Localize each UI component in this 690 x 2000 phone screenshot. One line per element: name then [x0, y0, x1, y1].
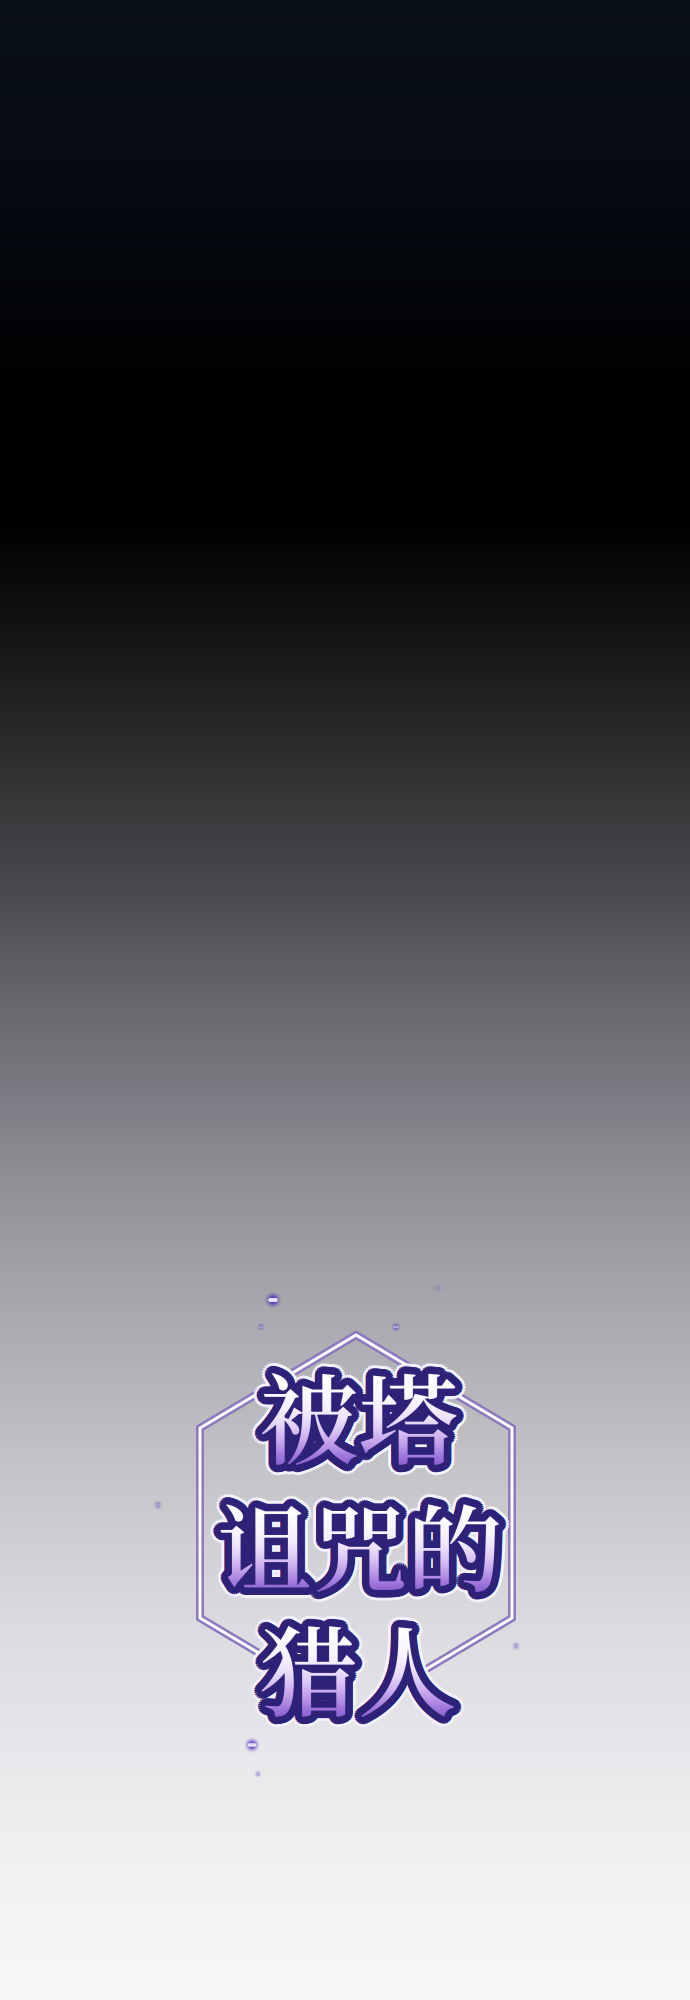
- staticText: 被塔: [259, 1338, 457, 1480]
- staticText: 被塔: [260, 1352, 458, 1494]
- staticText: 猎人: [269, 1595, 467, 1737]
- staticText: 被塔: [270, 1346, 468, 1488]
- staticText: 猎人: [262, 1596, 460, 1738]
- staticText: 猎人: [254, 1596, 452, 1738]
- staticText: 猎人: [252, 1593, 450, 1735]
- staticText: 猎人: [249, 1598, 447, 1740]
- staticText: 被塔: [261, 1348, 459, 1490]
- staticText: 诅咒的: [220, 1470, 505, 1606]
- staticText: 被塔: [257, 1333, 455, 1475]
- staticText: 被塔: [259, 1340, 457, 1482]
- staticText: 猎人: [250, 1593, 448, 1735]
- staticText: 被塔: [266, 1347, 464, 1489]
- staticText: 被塔: [265, 1338, 463, 1480]
- staticText: 猎人: [262, 1595, 460, 1737]
- staticText: 被塔: [263, 1345, 461, 1486]
- staticText: 被塔: [256, 1350, 454, 1491]
- staticText: 被塔: [256, 1347, 454, 1489]
- staticText: 被塔: [253, 1350, 451, 1492]
- staticText: 诅咒的: [220, 1477, 505, 1613]
- staticText: 诅咒的: [216, 1468, 501, 1604]
- staticText: 诅咒的: [213, 1478, 498, 1614]
- staticText: 诅咒的: [220, 1476, 505, 1612]
- staticText: 诅咒的: [226, 1477, 511, 1613]
- staticText: 猎人: [256, 1597, 454, 1738]
- staticText: 诅咒的: [226, 1475, 511, 1611]
- staticText: 猎人: [263, 1603, 461, 1745]
- staticText: 被塔: [258, 1352, 456, 1494]
- staticText: 诅咒的: [208, 1475, 493, 1611]
- staticText: 被塔: [267, 1341, 465, 1483]
- staticText: 猎人: [249, 1592, 447, 1734]
- staticText: 猎人: [256, 1600, 454, 1742]
- staticText: 被塔: [253, 1347, 451, 1489]
- staticText: 猎人: [267, 1591, 465, 1732]
- staticText: 诅咒的: [216, 1472, 501, 1608]
- staticText: 被塔: [257, 1342, 455, 1483]
- staticText: 被塔: [260, 1346, 458, 1488]
- staticText: 猎人: [252, 1602, 450, 1744]
- staticText: 猎人: [258, 1592, 456, 1734]
- staticText: 诅咒的: [212, 1466, 497, 1602]
- staticText: 猎人: [263, 1599, 461, 1741]
- staticText: 被塔: [262, 1352, 460, 1494]
- staticText: 被塔: [257, 1338, 455, 1480]
- staticText: 被塔: [264, 1347, 462, 1489]
- staticText: 诅咒的: [207, 1475, 492, 1611]
- staticText: 猎人: [255, 1602, 453, 1743]
- staticText: 诅咒的: [228, 1478, 513, 1614]
- staticText: 被塔: [270, 1340, 468, 1482]
- staticText: 诅咒的: [211, 1469, 496, 1605]
- staticText: 诅咒的: [215, 1473, 500, 1609]
- staticText: 被塔: [267, 1350, 465, 1492]
- staticText: 被塔: [260, 1336, 458, 1477]
- staticText: 被塔: [255, 1342, 453, 1483]
- staticText: 猎人: [250, 1590, 448, 1732]
- staticText: 诅咒的: [215, 1476, 500, 1612]
- staticText: 被塔: [262, 1345, 460, 1487]
- staticText: 被塔: [251, 1343, 449, 1485]
- staticText: 诅咒的: [214, 1481, 499, 1617]
- staticText: 被塔: [262, 1334, 460, 1476]
- staticText: 猎人: [261, 1604, 459, 1746]
- staticText: 猎人: [257, 1588, 455, 1730]
- staticText: 诅咒的: [219, 1478, 504, 1614]
- staticText: 诅咒的: [220, 1474, 505, 1610]
- staticText: 被塔: [255, 1334, 453, 1476]
- staticText: 诅咒的: [224, 1481, 509, 1617]
- staticText: 诅咒的: [218, 1472, 503, 1608]
- staticText: 猎人: [258, 1590, 456, 1732]
- staticText: 猎人: [263, 1602, 461, 1743]
- staticText: 被塔: [268, 1339, 466, 1480]
- staticText: 被塔: [264, 1335, 462, 1477]
- staticText: 猎人: [254, 1600, 452, 1742]
- staticText: 被塔: [258, 1346, 456, 1487]
- staticText: 猎人: [265, 1589, 463, 1730]
- staticText: 被塔: [260, 1333, 458, 1474]
- staticText: 被塔: [253, 1339, 451, 1481]
- staticText: 诅咒的: [215, 1477, 500, 1613]
- staticText: 诅咒的: [223, 1480, 508, 1616]
- staticText: 被塔: [251, 1338, 449, 1480]
- staticText: 诅咒的: [224, 1479, 509, 1615]
- staticText: 诅咒的: [215, 1485, 500, 1621]
- staticText: 被塔: [258, 1340, 456, 1482]
- staticText: 猎人: [264, 1598, 462, 1740]
- staticText: 被塔: [253, 1336, 451, 1477]
- staticText: 被塔: [264, 1339, 462, 1481]
- staticText: 诅咒的: [217, 1466, 502, 1602]
- staticText: 被塔: [258, 1336, 456, 1478]
- staticText: 猎人: [252, 1591, 450, 1733]
- staticText: 猎人: [250, 1600, 448, 1742]
- staticText: 诅咒的: [215, 1480, 500, 1616]
- staticText: 被塔: [267, 1336, 465, 1477]
- staticText: 被塔: [268, 1348, 466, 1489]
- staticText: 猎人: [264, 1596, 462, 1738]
- staticText: 诅咒的: [210, 1477, 495, 1613]
- staticText: 猎人: [260, 1598, 458, 1740]
- staticText: 诅咒的: [212, 1476, 497, 1612]
- staticText: 猎人: [256, 1585, 454, 1727]
- staticText: 诅咒的: [215, 1474, 500, 1610]
- staticText: 被塔: [260, 1334, 458, 1476]
- staticText: 诅咒的: [210, 1482, 495, 1618]
